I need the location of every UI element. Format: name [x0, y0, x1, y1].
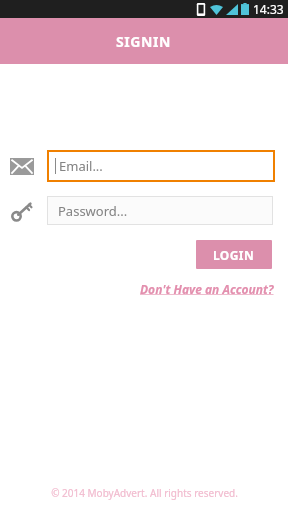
other: Password: [10, 199, 34, 223]
other: Email: [10, 154, 34, 178]
button[interactable]: Password...: [47, 196, 273, 225]
staticText: Don't Have an Account?: [140, 281, 274, 297]
staticText: Password...: [58, 202, 128, 220]
staticText: SIGNIN: [116, 32, 172, 51]
staticText: Email...: [59, 157, 103, 175]
staticText: © 2014 MobyAdvert. All rights reserved.: [51, 486, 238, 500]
staticText: LOGIN: [213, 247, 255, 263]
button[interactable]: LOGIN: [196, 240, 272, 269]
button[interactable]: Email...: [47, 150, 275, 182]
staticText: 14:33: [253, 1, 284, 17]
button[interactable]: Don't Have an Account?: [140, 281, 274, 297]
